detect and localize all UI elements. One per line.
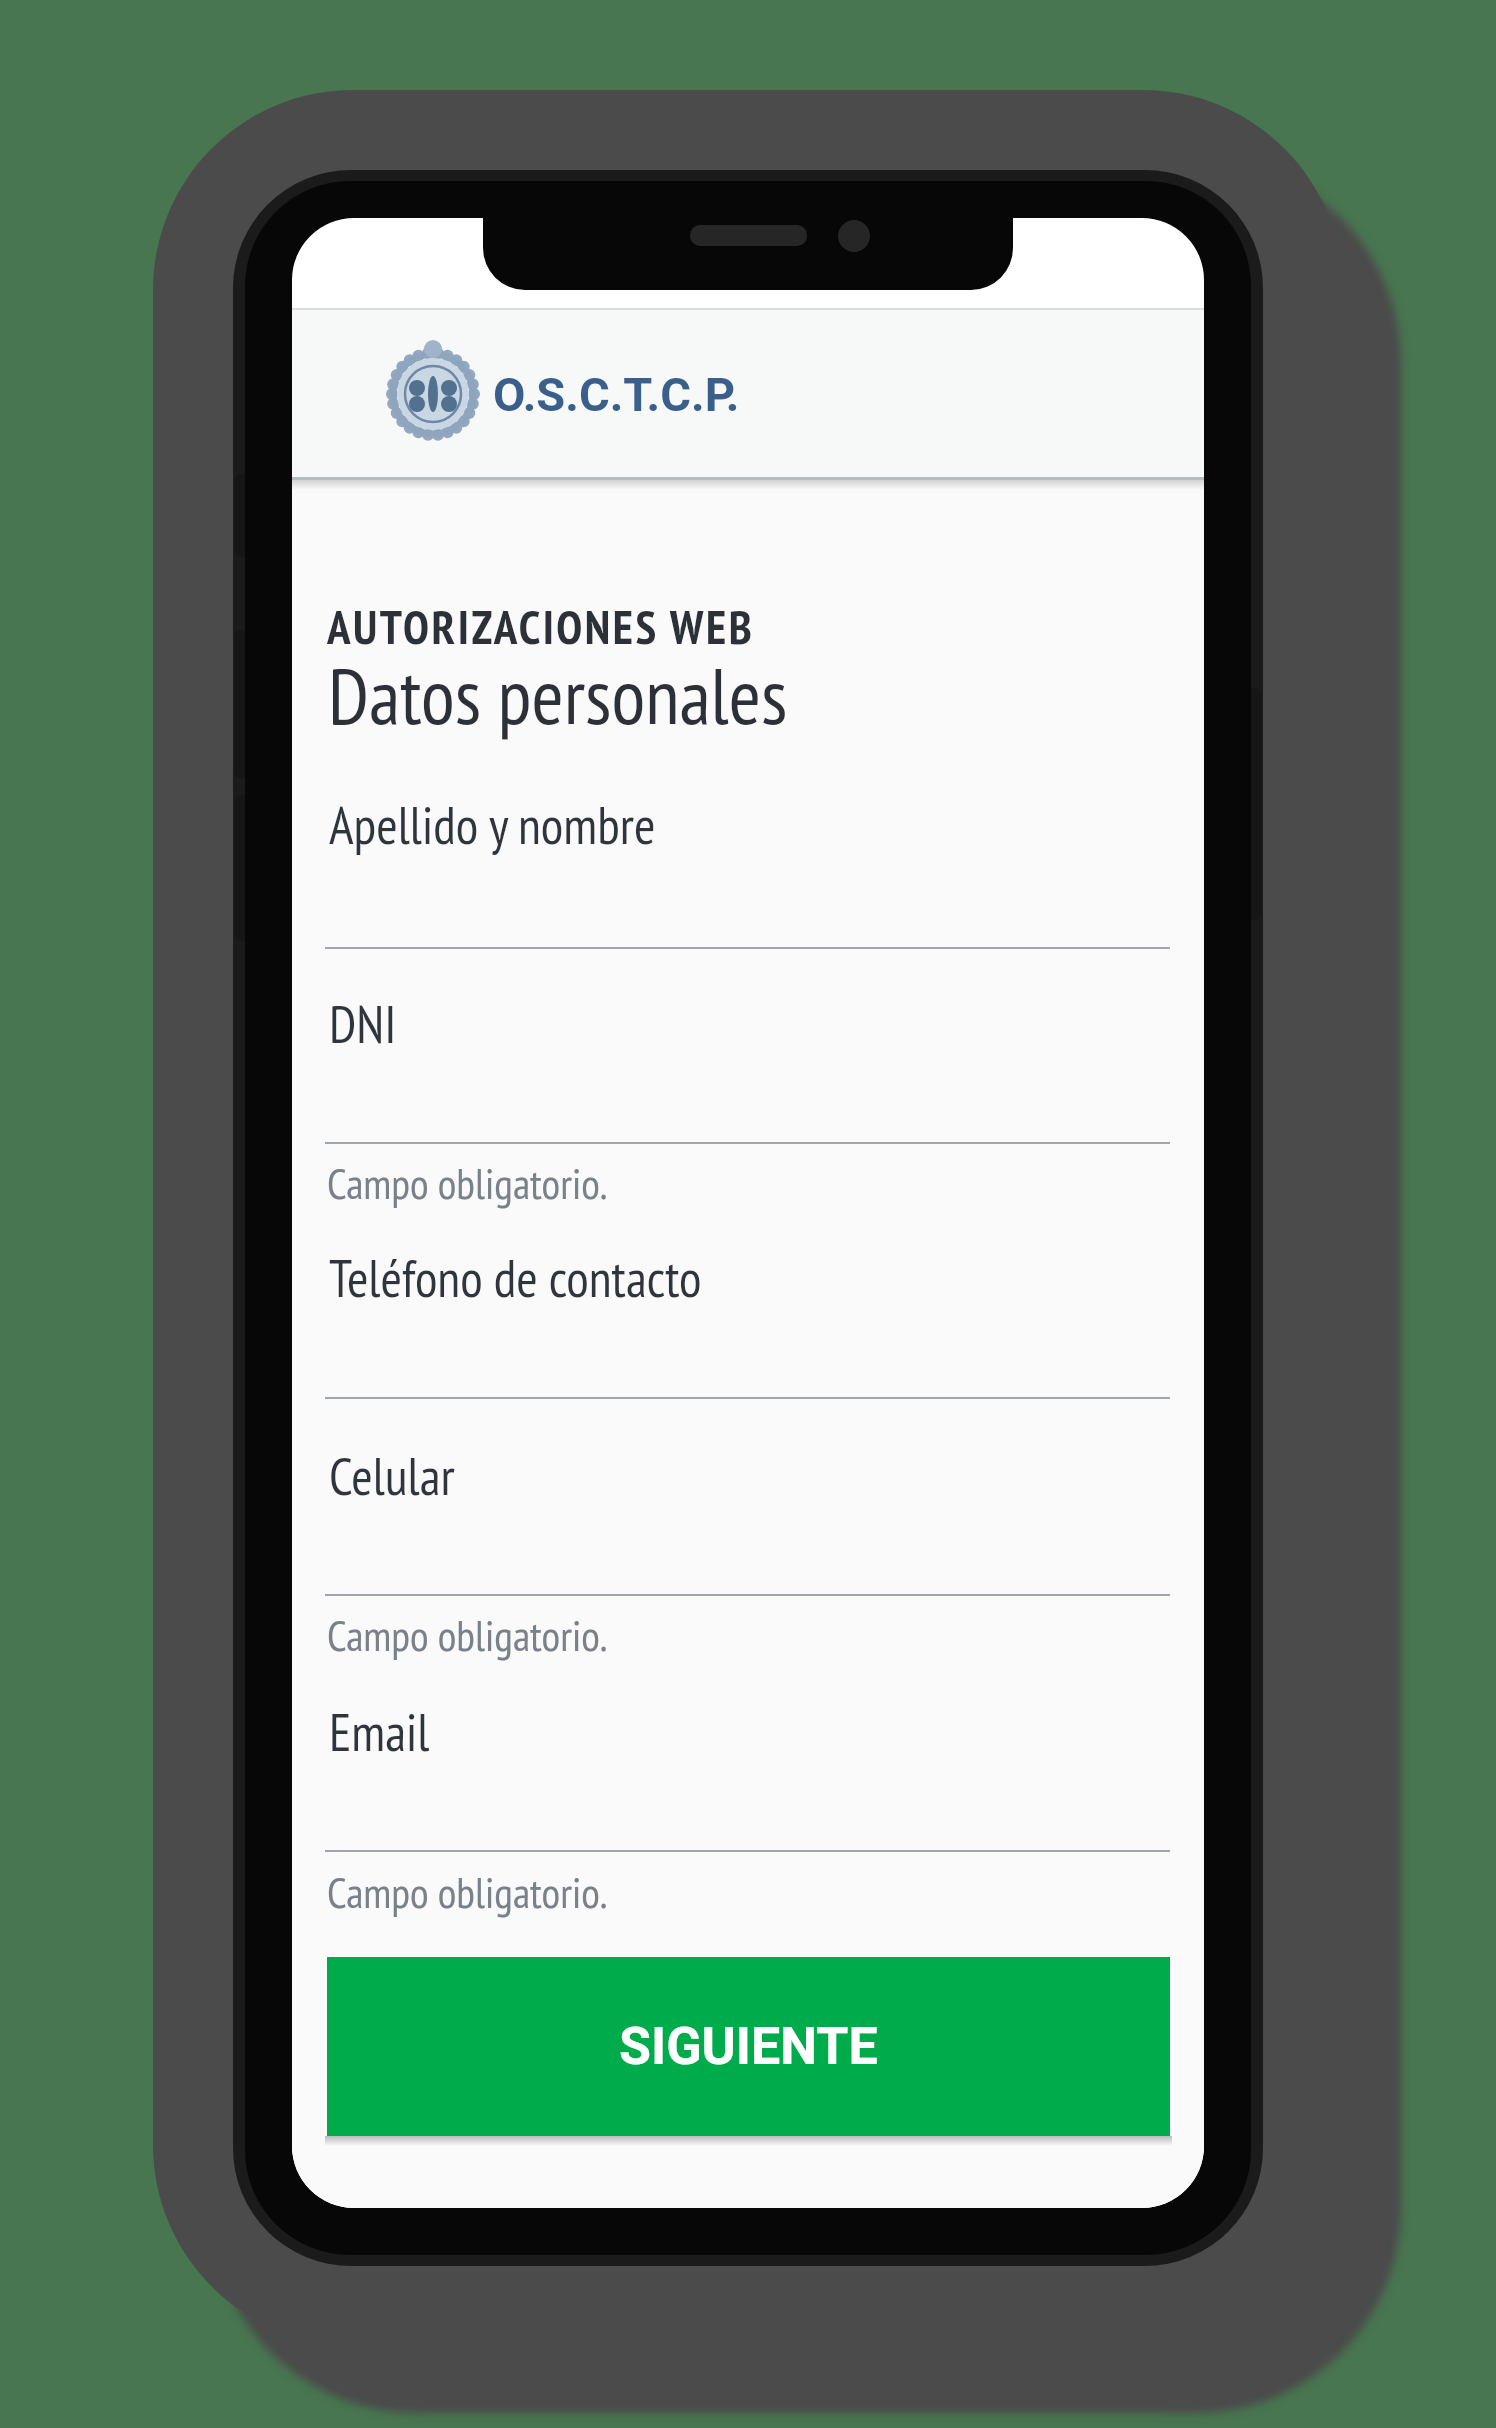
staticText: Apellido y nombre	[329, 791, 656, 858]
staticText: Celular	[329, 1442, 455, 1509]
staticText: DNI	[329, 990, 397, 1057]
staticText: Campo obligatorio.	[327, 1864, 608, 1920]
button[interactable]: SIGUIENTE	[327, 1957, 1170, 2136]
staticText: Teléfono de contacto	[329, 1244, 702, 1311]
staticText: AUTORIZACIONES WEB	[327, 596, 755, 657]
staticText: SIGUIENTE	[619, 2016, 878, 2077]
staticText: Datos personales	[328, 645, 788, 746]
staticText: O.S.C.T.C.P.	[493, 367, 740, 422]
staticText: Email	[329, 1698, 430, 1765]
staticText: Campo obligatorio.	[327, 1607, 608, 1663]
staticText: Campo obligatorio.	[327, 1155, 608, 1211]
